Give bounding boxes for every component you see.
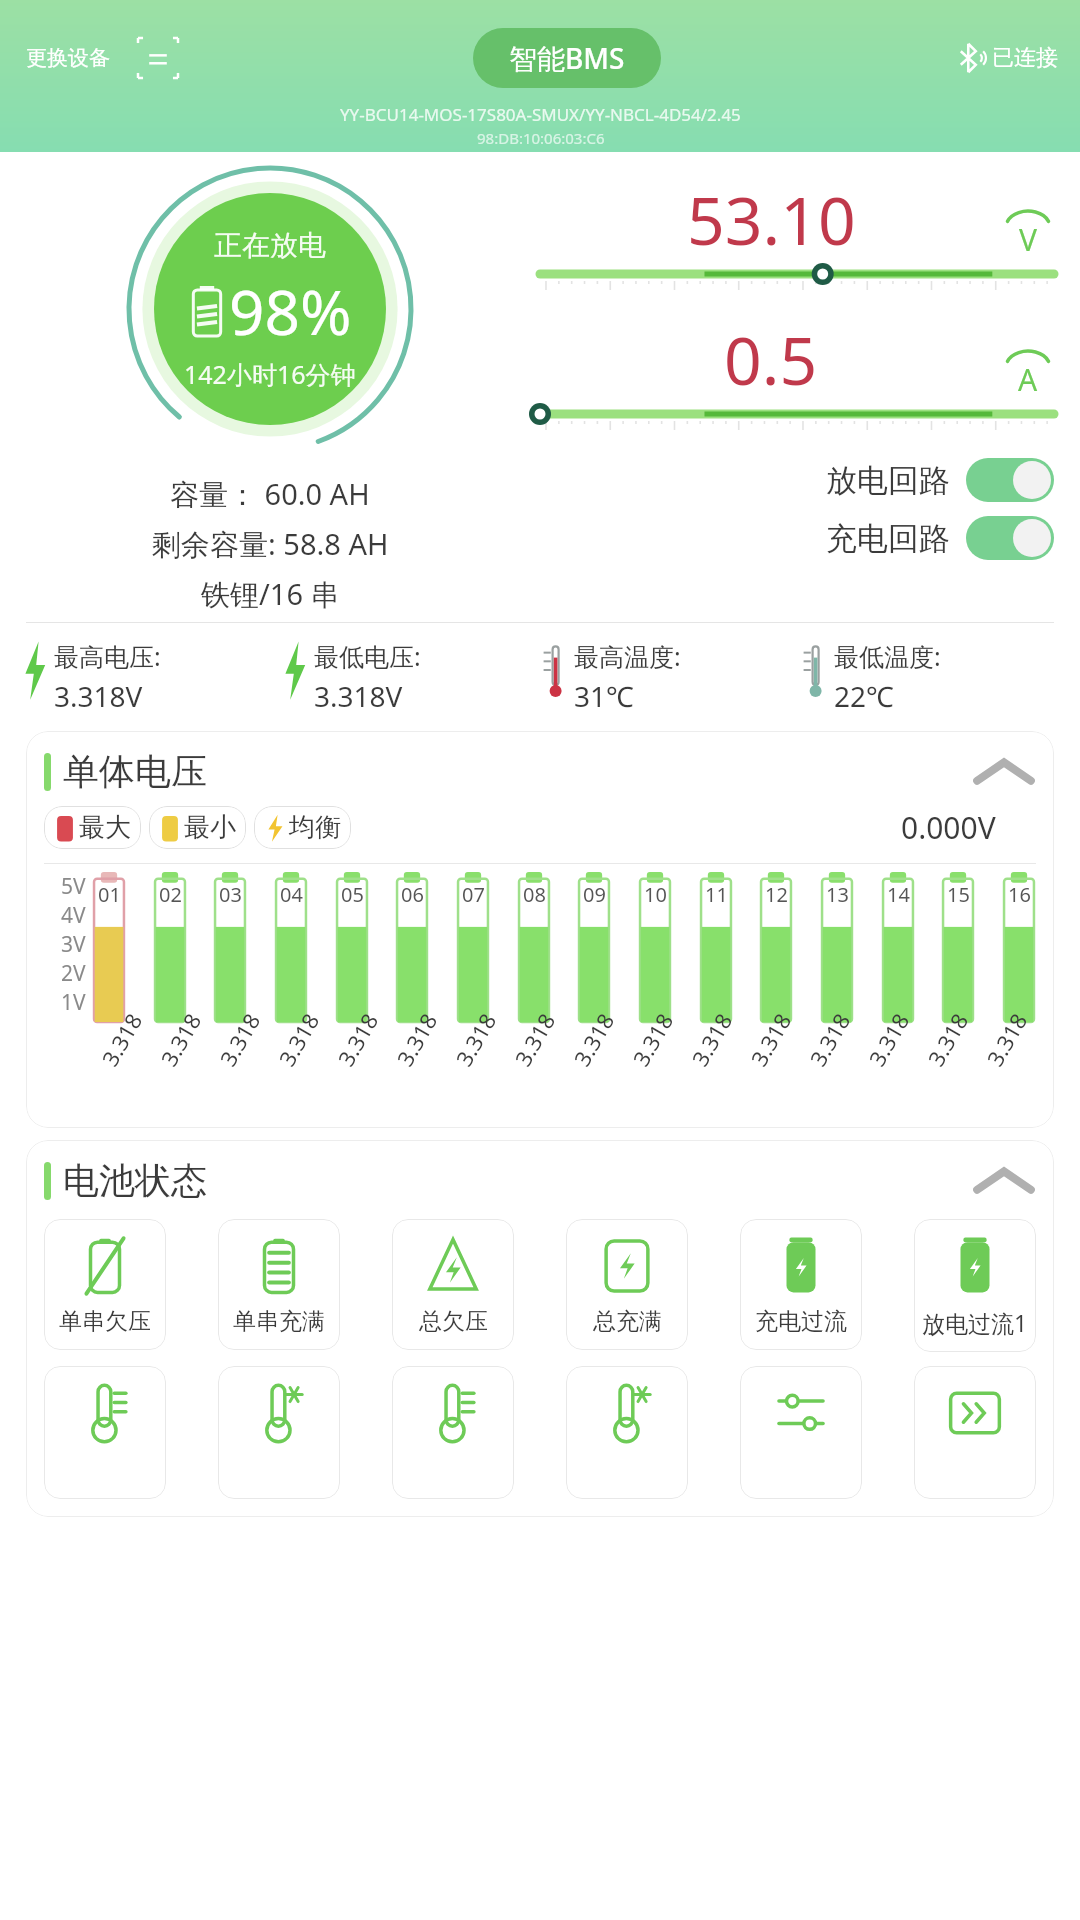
staticText: 3.318: [979, 1007, 1034, 1071]
staticText: 均衡: [289, 811, 341, 844]
staticText: 22℃: [834, 677, 894, 715]
staticText: 98%: [229, 269, 352, 353]
staticText: 3.318: [271, 1007, 326, 1071]
staticText: 06: [401, 881, 424, 908]
staticText: 正在放电: [214, 228, 326, 263]
button[interactable]: 最低温度:: [800, 639, 1060, 715]
staticText: 1V: [61, 988, 86, 1017]
staticText: 更换设备: [26, 45, 110, 71]
staticText: 电池状态: [63, 1158, 207, 1203]
staticText: 单串充满: [233, 1307, 325, 1336]
staticText: 53.10: [687, 174, 856, 264]
staticText: 单串欠压: [59, 1307, 151, 1336]
button[interactable]: 均衡: [254, 806, 351, 849]
staticText: 3.318: [802, 1007, 857, 1071]
staticText: 12: [765, 881, 788, 908]
button[interactable]: [392, 1366, 514, 1499]
staticText: YY-BCU14-MOS-17S80A-SMUX/YY-NBCL-4D54/2.…: [340, 103, 741, 126]
staticText: V: [1019, 219, 1037, 260]
staticText: 3.318: [153, 1007, 208, 1071]
button[interactable]: 单串欠压: [44, 1219, 166, 1350]
staticText: 4V: [61, 901, 86, 930]
staticText: 最高电压:: [54, 639, 161, 673]
button[interactable]: 总欠压: [392, 1219, 514, 1350]
staticText: 04: [280, 881, 303, 908]
staticText: 10: [644, 881, 667, 908]
button[interactable]: 单体电压: [44, 749, 1036, 794]
staticText: 3.318: [389, 1007, 444, 1071]
staticText: 充电回路: [826, 519, 950, 558]
staticText: 智能BMS: [509, 39, 625, 77]
button[interactable]: [740, 1366, 862, 1499]
staticText: 3.318: [448, 1007, 503, 1071]
staticText: A: [1018, 359, 1038, 400]
button[interactable]: 最高温度:: [540, 639, 800, 715]
staticText: 01: [98, 881, 121, 908]
staticText: 3.318: [212, 1007, 267, 1071]
staticText: 总充满: [593, 1307, 662, 1336]
staticText: 13: [826, 881, 849, 908]
button[interactable]: 最大: [44, 806, 141, 849]
staticText: 铁锂/16 串: [201, 574, 340, 614]
staticText: 08: [523, 881, 546, 908]
staticText: 3.318V: [54, 677, 143, 715]
staticText: 最高温度:: [574, 639, 681, 673]
staticText: 3.318V: [314, 677, 403, 715]
button[interactable]: 充电回路: [540, 516, 1054, 560]
button[interactable]: [218, 1366, 340, 1499]
button[interactable]: Collapse: [972, 752, 1036, 792]
staticText: 放电过流1: [922, 1307, 1028, 1338]
staticText: 3.318: [861, 1007, 916, 1071]
staticText: 3.318: [566, 1007, 621, 1071]
button[interactable]: [44, 1366, 166, 1499]
staticText: 3.318: [743, 1007, 798, 1071]
button[interactable]: 最小: [149, 806, 246, 849]
staticText: 剩余容量: 58.8 AH: [152, 524, 389, 564]
button[interactable]: 已连接: [954, 41, 1058, 75]
staticText: 0.5: [724, 314, 818, 404]
button[interactable]: 电池状态: [44, 1158, 1036, 1203]
staticText: 31℃: [574, 677, 634, 715]
staticText: 03: [219, 881, 242, 908]
staticText: 3.318: [330, 1007, 385, 1071]
staticText: 14: [887, 881, 910, 908]
button[interactable]: [566, 1366, 688, 1499]
staticText: 5V: [61, 872, 86, 901]
staticText: 142小时16分钟: [184, 357, 356, 391]
button[interactable]: 单串充满: [218, 1219, 340, 1350]
button[interactable]: 最高电压:: [20, 639, 280, 715]
staticText: 11: [705, 881, 728, 908]
staticText: 02: [159, 881, 182, 908]
staticText: 最低电压:: [314, 639, 421, 673]
staticText: 0.000V: [901, 807, 996, 848]
staticText: 单体电压: [63, 749, 207, 794]
button[interactable]: 最低电压:: [280, 639, 540, 715]
button[interactable]: [914, 1366, 1036, 1499]
staticText: 07: [462, 881, 485, 908]
staticText: 放电回路: [826, 461, 950, 500]
staticText: 最低温度:: [834, 639, 941, 673]
staticText: 已连接: [992, 44, 1058, 72]
staticText: 最大: [79, 811, 131, 844]
button[interactable]: 放电回路: [540, 458, 1054, 502]
staticText: 98:DB:10:06:03:C6: [477, 128, 605, 148]
button[interactable]: 总充满: [566, 1219, 688, 1350]
staticText: 最小: [184, 811, 236, 844]
staticText: 3.318: [920, 1007, 975, 1071]
staticText: 2V: [61, 959, 86, 988]
button[interactable]: 智能BMS: [473, 28, 661, 88]
button[interactable]: 更换设备: [22, 41, 114, 75]
button[interactable]: Collapse: [972, 1161, 1036, 1201]
staticText: 充电过流: [755, 1307, 847, 1336]
button[interactable]: 充电过流: [740, 1219, 862, 1350]
staticText: 3.318: [684, 1007, 739, 1071]
button[interactable]: 放电过流1: [914, 1219, 1036, 1352]
staticText: 09: [583, 881, 606, 908]
button[interactable]: Scan: [136, 36, 180, 80]
